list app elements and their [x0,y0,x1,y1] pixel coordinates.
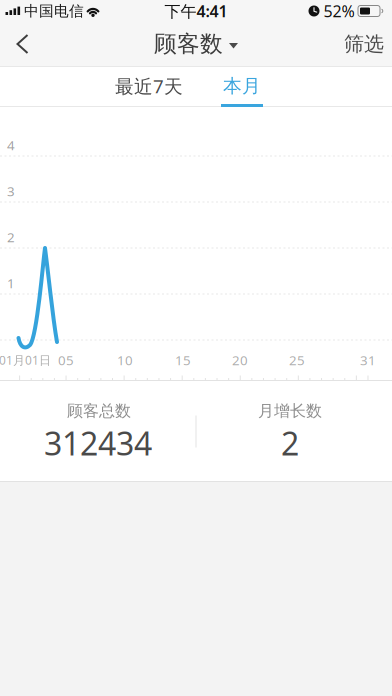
button[interactable]: 本月 [217,65,267,106]
button[interactable]: 最近7天 [109,65,189,107]
staticText: 312434 [44,422,152,464]
staticText: 2 [281,422,299,464]
staticText: 25 [289,351,305,369]
staticText: 31 [360,351,376,369]
staticText: 筛选 [344,32,384,56]
staticText: 10 [117,351,133,369]
staticText: 3 [7,182,15,200]
staticText: 月增长数 [258,401,322,421]
staticText: 1 [7,274,15,292]
button[interactable]: 筛选 [334,22,392,66]
staticText: 52% [323,0,354,22]
staticText: 05 [58,351,74,369]
staticText: 01月01日 [0,352,51,368]
staticText: 中国电信 [24,2,84,20]
button[interactable]: 顾客数 [154,30,238,58]
staticText: 2 [7,228,15,246]
staticText: 下午4:41 [164,0,227,22]
staticText: 顾客数 [154,30,223,58]
button[interactable]: 返回 [0,22,49,66]
staticText: 4 [7,136,15,154]
staticText: 20 [232,351,248,369]
staticText: 15 [175,351,191,369]
staticText: 最近7天 [115,74,183,98]
staticText: 顾客总数 [67,401,131,421]
staticText: 本月 [223,74,261,97]
